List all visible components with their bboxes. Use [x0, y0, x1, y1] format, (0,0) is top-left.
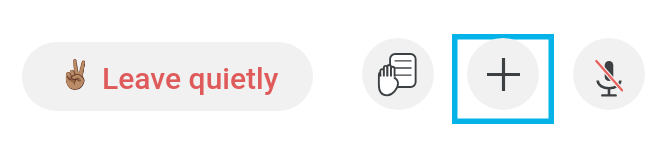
button[interactable]: Turn on microphone [573, 38, 645, 110]
button[interactable]: Add [467, 38, 539, 110]
staticText: Leave quietly [102, 61, 279, 96]
button[interactable]: ✌🏽 [22, 42, 313, 111]
button[interactable]: Raise hand [362, 38, 434, 110]
staticText: ✌🏽 [58, 58, 93, 91]
